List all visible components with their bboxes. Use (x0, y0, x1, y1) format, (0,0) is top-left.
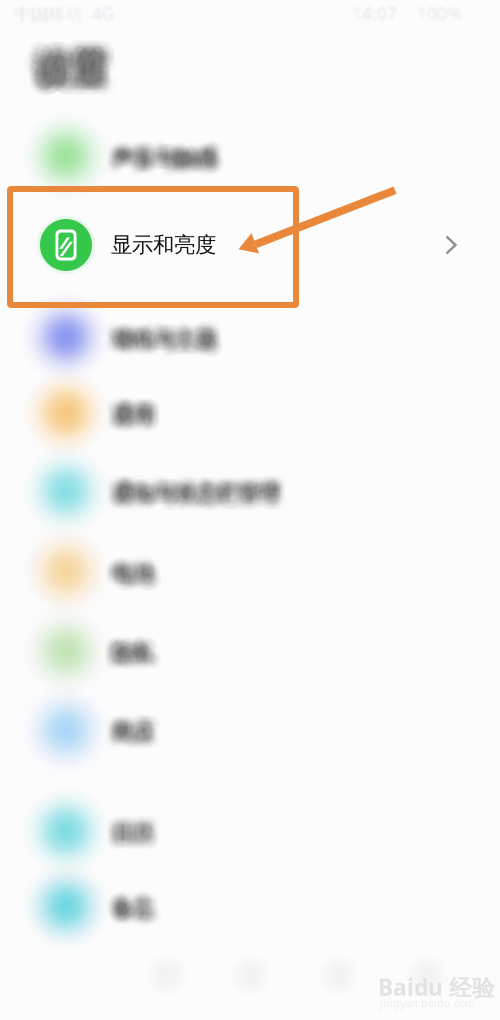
staticText: 设置 (21, 47, 95, 93)
staticText: 设置 (35, 30, 109, 76)
staticText: 设置 (41, 46, 115, 92)
staticText: 14:07 100% (351, 1, 460, 24)
staticText: 声音与触感 (113, 136, 218, 162)
staticText: 日历 (101, 825, 143, 851)
staticText: 设置 (21, 45, 95, 91)
staticText: 墙纸与主题 (120, 334, 225, 360)
staticText: 日历 (107, 811, 149, 837)
staticText: 日历 (122, 821, 164, 847)
staticText: 通用 (103, 394, 145, 420)
staticText: 声音与触感 (110, 139, 215, 165)
staticText: 中国移动 4G (6, 0, 107, 21)
staticText: 墙纸与主题 (119, 319, 224, 345)
staticText: 设置 (20, 43, 94, 89)
staticText: 声音与触感 (119, 138, 224, 164)
staticText: 中国移动 4G (6, 0, 107, 22)
staticText: 设置 (28, 38, 102, 84)
staticText: 通知与状态栏管理 (111, 471, 279, 497)
staticText: 备忘 (120, 888, 162, 914)
staticText: 通知与状态栏管理 (106, 469, 274, 495)
staticText: 通知与状态栏管理 (119, 473, 287, 499)
staticText: 设置 (30, 32, 104, 78)
staticText: 设置 (24, 34, 98, 80)
staticText: 14:07 100% (352, 0, 461, 22)
staticText: 设置 (37, 49, 111, 95)
staticText: 墙纸与主题 (104, 328, 209, 354)
staticText: 电池 (102, 552, 144, 578)
staticText: 声音与触感 (105, 155, 210, 181)
staticText: 14:07 100% (348, 3, 457, 26)
staticText: 隐私 (102, 647, 144, 673)
staticText: 14:07 100% (362, 0, 471, 23)
staticText: 日历 (102, 812, 144, 838)
staticText: 声音与触感 (104, 153, 209, 179)
staticText: 商店 (107, 716, 149, 742)
staticText: 商店 (116, 708, 158, 734)
staticText: 备忘 (117, 892, 159, 918)
staticText: 商店 (117, 727, 159, 753)
staticText: 日历 (120, 827, 162, 853)
staticText: 备忘 (112, 892, 154, 918)
staticText: 备忘 (103, 899, 145, 925)
staticText: 中国移动 4G (24, 1, 125, 24)
staticText: 设置 (19, 43, 93, 89)
staticText: 14:07 100% (352, 0, 461, 21)
staticText: 墙纸与主题 (106, 332, 211, 358)
staticText: 墙纸与主题 (117, 325, 222, 351)
staticText: 14:07 100% (360, 7, 469, 30)
staticText: 日历 (121, 830, 163, 856)
staticText: 通知与状态栏管理 (111, 477, 279, 503)
staticText: 电池 (103, 568, 145, 594)
staticText: 商店 (114, 725, 156, 751)
staticText: 设置 (29, 47, 103, 93)
staticText: 设置 (35, 50, 109, 96)
staticText: 通用 (110, 397, 152, 423)
staticText: 商店 (112, 717, 154, 743)
staticText: 墙纸与主题 (106, 318, 211, 344)
staticText: 隐私 (116, 642, 158, 668)
staticText: 中国移动 4G (22, 1, 123, 24)
staticText: 设置 (49, 49, 123, 95)
button[interactable]: 显示和亮度 (0, 193, 500, 297)
staticText: 备忘 (103, 888, 145, 914)
staticText: 电池 (111, 567, 153, 593)
